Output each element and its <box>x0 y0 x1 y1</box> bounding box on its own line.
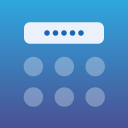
button[interactable]: 3 <box>85 57 105 76</box>
button[interactable]: 2 <box>54 57 74 76</box>
button[interactable]: 6 <box>85 87 105 107</box>
button[interactable]: 5 <box>54 87 74 107</box>
button[interactable]: 4 <box>24 87 43 107</box>
button[interactable]: Passcode, 5 digits entered <box>24 22 104 44</box>
button[interactable]: 1 <box>24 57 43 76</box>
